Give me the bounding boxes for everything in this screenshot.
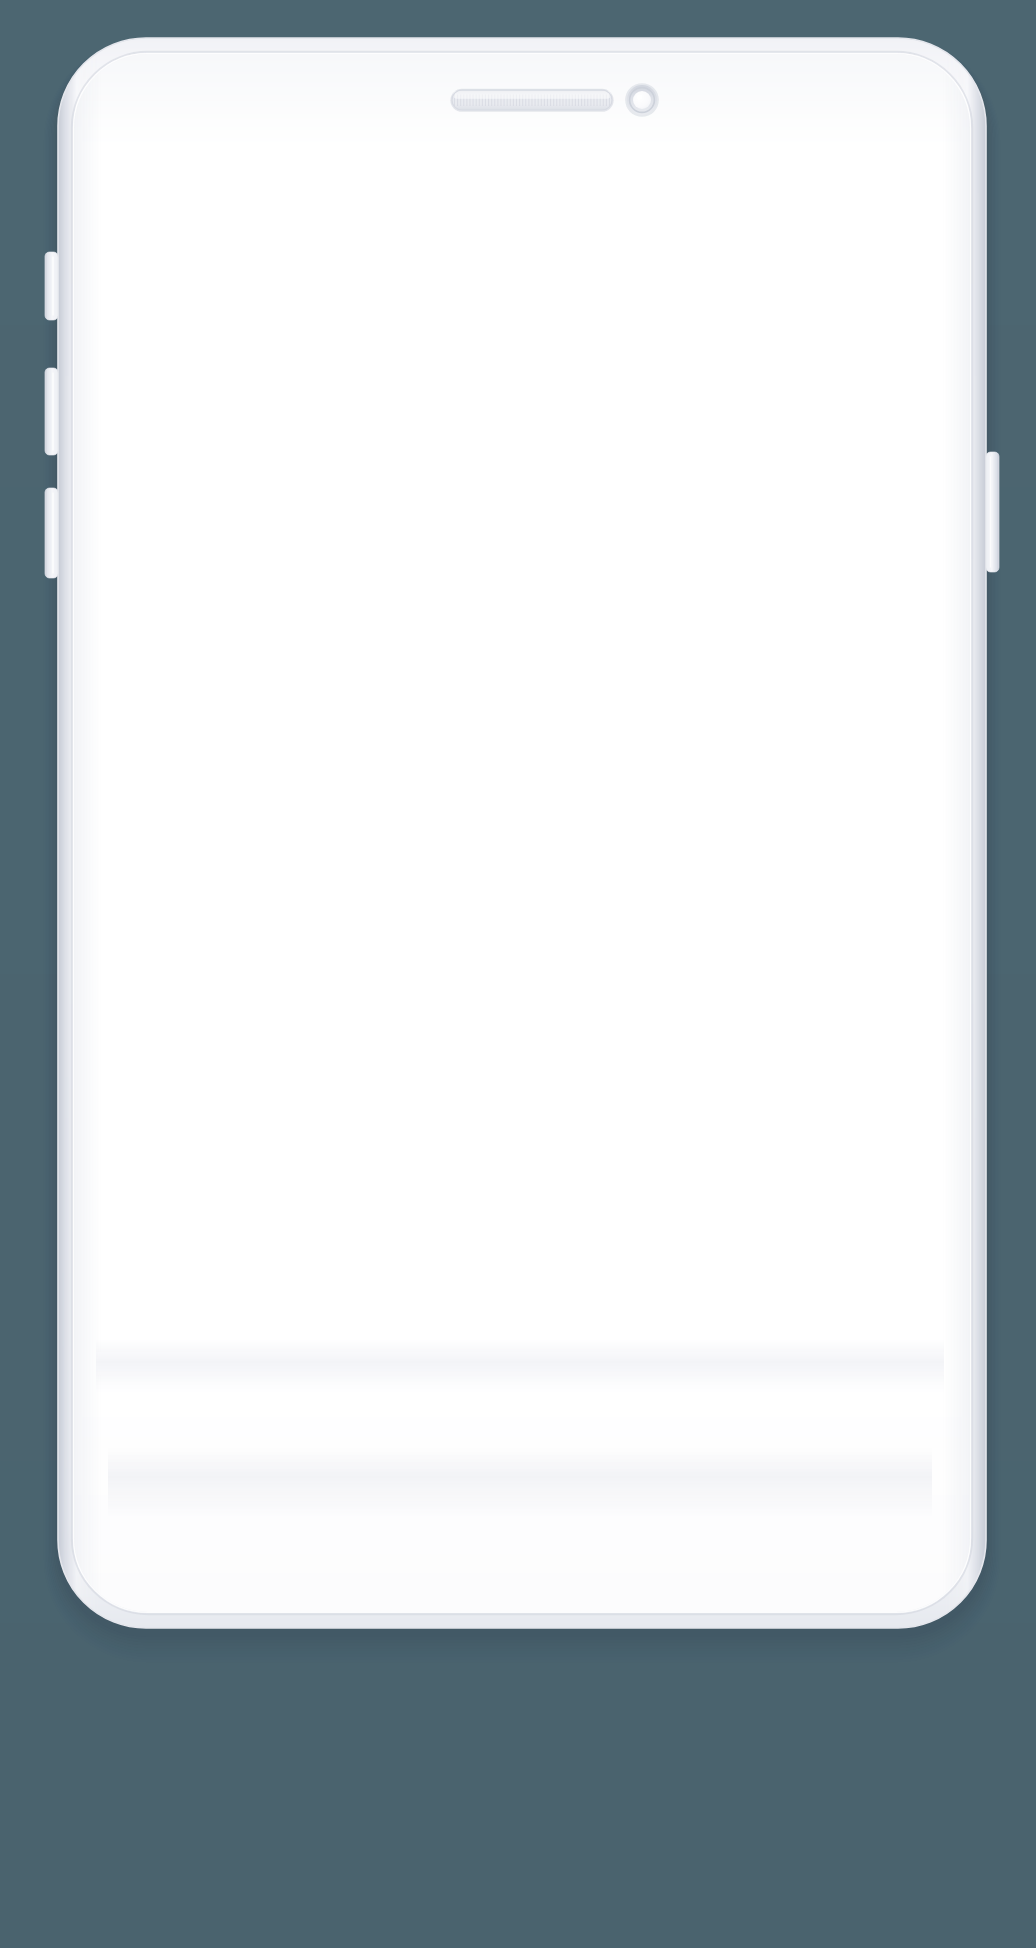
- button[interactable]: Phone device mockup: [0, 0, 1036, 1948]
